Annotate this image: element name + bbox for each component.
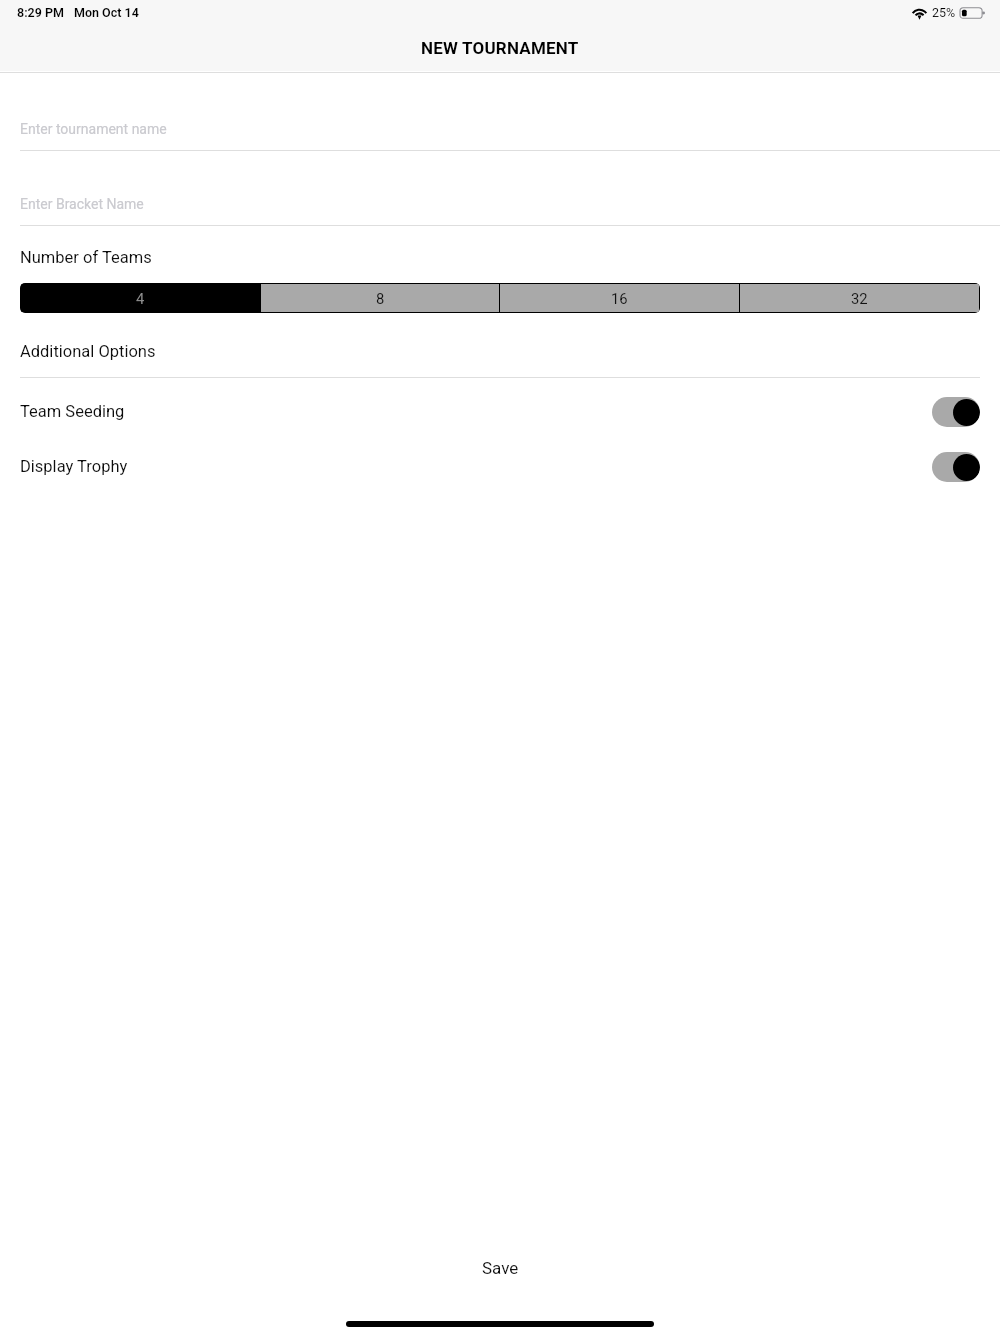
staticText: 8 <box>376 290 385 307</box>
button[interactable]: 16 <box>500 284 739 312</box>
staticText: 16 <box>611 290 628 307</box>
staticText: Additional Options <box>20 342 156 361</box>
staticText: Display Trophy <box>20 457 128 476</box>
button[interactable]: 8 <box>261 284 499 312</box>
staticText: Number of Teams <box>20 248 152 267</box>
button[interactable]: Display Trophy <box>0 439 1000 494</box>
staticText: Mon Oct 14 <box>74 5 139 20</box>
staticText: 8:29 PM <box>17 5 64 20</box>
button[interactable]: Enter tournament name <box>0 72 1000 151</box>
button[interactable]: 4 <box>21 284 260 312</box>
button[interactable]: Team Seeding <box>0 384 1000 439</box>
button[interactable]: Save <box>0 1250 1000 1289</box>
other: Wi-Fi <box>910 6 929 20</box>
button[interactable]: Team Seeding <box>932 397 980 427</box>
button[interactable]: 32 <box>740 284 979 312</box>
button[interactable]: Enter Bracket Name <box>0 151 1000 226</box>
staticText: Save <box>482 1258 519 1278</box>
staticText: 4 <box>136 290 145 307</box>
button[interactable]: Display Trophy <box>932 452 980 482</box>
other: Battery 25% <box>960 6 986 20</box>
staticText: Enter Bracket Name <box>20 196 144 212</box>
staticText: Team Seeding <box>20 402 125 421</box>
staticText: 25% <box>932 5 956 20</box>
staticText: NEW TOURNAMENT <box>421 38 579 58</box>
staticText: Enter tournament name <box>20 121 167 137</box>
staticText: 32 <box>851 290 868 307</box>
